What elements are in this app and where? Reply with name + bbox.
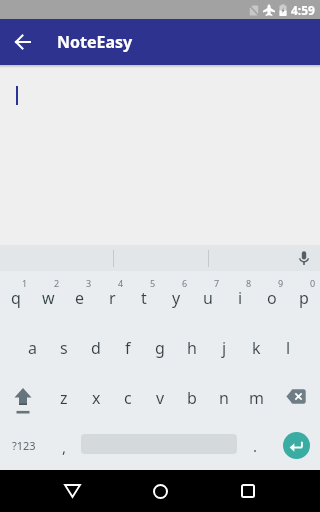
button[interactable]: t [128, 271, 160, 321]
staticText: 8 [246, 277, 252, 289]
staticText: 4 [118, 277, 124, 289]
staticText: NoteEasy [57, 31, 133, 53]
staticText: t [141, 287, 147, 309]
staticText: a [28, 337, 37, 359]
button[interactable] [0, 19, 46, 65]
staticText: 2 [54, 277, 60, 289]
staticText: x [92, 387, 101, 409]
staticText: r [109, 287, 116, 309]
button[interactable]: f [112, 321, 144, 371]
button[interactable] [136, 470, 184, 512]
button[interactable]: w [32, 271, 64, 321]
staticText: 4:59 [291, 2, 315, 18]
button[interactable] [272, 421, 320, 470]
staticText: w [42, 287, 55, 309]
button[interactable]: d [80, 321, 112, 371]
staticText: y [172, 287, 181, 309]
button[interactable] [291, 245, 317, 271]
staticText: 6 [182, 277, 188, 289]
staticText: 5 [150, 277, 156, 289]
staticText: 3 [86, 277, 92, 289]
staticText: n [219, 387, 229, 409]
button[interactable] [0, 371, 48, 421]
staticText: m [249, 387, 264, 409]
button[interactable] [224, 470, 272, 512]
button[interactable]: s [48, 321, 80, 371]
staticText: 1 [22, 277, 28, 289]
button[interactable]: r [96, 271, 128, 321]
staticText: l [286, 337, 291, 359]
button[interactable]: e [64, 271, 96, 321]
button[interactable]: p [288, 271, 320, 321]
button[interactable] [48, 470, 96, 512]
button[interactable]: c [112, 371, 144, 421]
staticText: d [91, 337, 101, 359]
button[interactable]: x [80, 371, 112, 421]
button[interactable]: n [208, 371, 240, 421]
button[interactable]: l [272, 321, 304, 371]
staticText: g [155, 337, 165, 359]
staticText: q [11, 287, 21, 309]
staticText: ?123 [12, 438, 36, 453]
button[interactable]: . [238, 421, 272, 470]
staticText: b [187, 387, 197, 409]
button[interactable]: q [0, 271, 32, 321]
button[interactable]: , [48, 421, 80, 470]
button[interactable]: y [160, 271, 192, 321]
button[interactable]: i [224, 271, 256, 321]
staticText: i [238, 287, 243, 309]
staticText: z [60, 387, 68, 409]
staticText: c [124, 387, 132, 409]
button[interactable]: h [176, 321, 208, 371]
staticText: o [267, 287, 277, 309]
staticText: 0 [310, 277, 316, 289]
staticText: s [60, 337, 68, 359]
button[interactable]: ?123 [0, 421, 48, 470]
staticText: v [156, 387, 165, 409]
staticText: 9 [278, 277, 284, 289]
button[interactable]: a [16, 321, 48, 371]
button[interactable]: j [208, 321, 240, 371]
staticText: u [203, 287, 213, 309]
button[interactable] [80, 421, 238, 470]
button[interactable]: z [48, 371, 80, 421]
staticText: , [62, 437, 67, 457]
staticText: j [222, 337, 227, 359]
button[interactable]: k [240, 321, 272, 371]
staticText: 7 [214, 277, 220, 289]
staticText: f [125, 337, 131, 359]
button[interactable] [272, 371, 320, 421]
staticText: h [187, 337, 197, 359]
button[interactable]: v [144, 371, 176, 421]
staticText: k [252, 337, 261, 359]
button[interactable]: u [192, 271, 224, 321]
button[interactable]: b [176, 371, 208, 421]
staticText: p [299, 287, 309, 309]
button[interactable]: m [240, 371, 272, 421]
button[interactable]: o [256, 271, 288, 321]
staticText: . [253, 436, 258, 456]
staticText: e [75, 287, 85, 309]
button[interactable]: g [144, 321, 176, 371]
button[interactable] [0, 65, 320, 245]
